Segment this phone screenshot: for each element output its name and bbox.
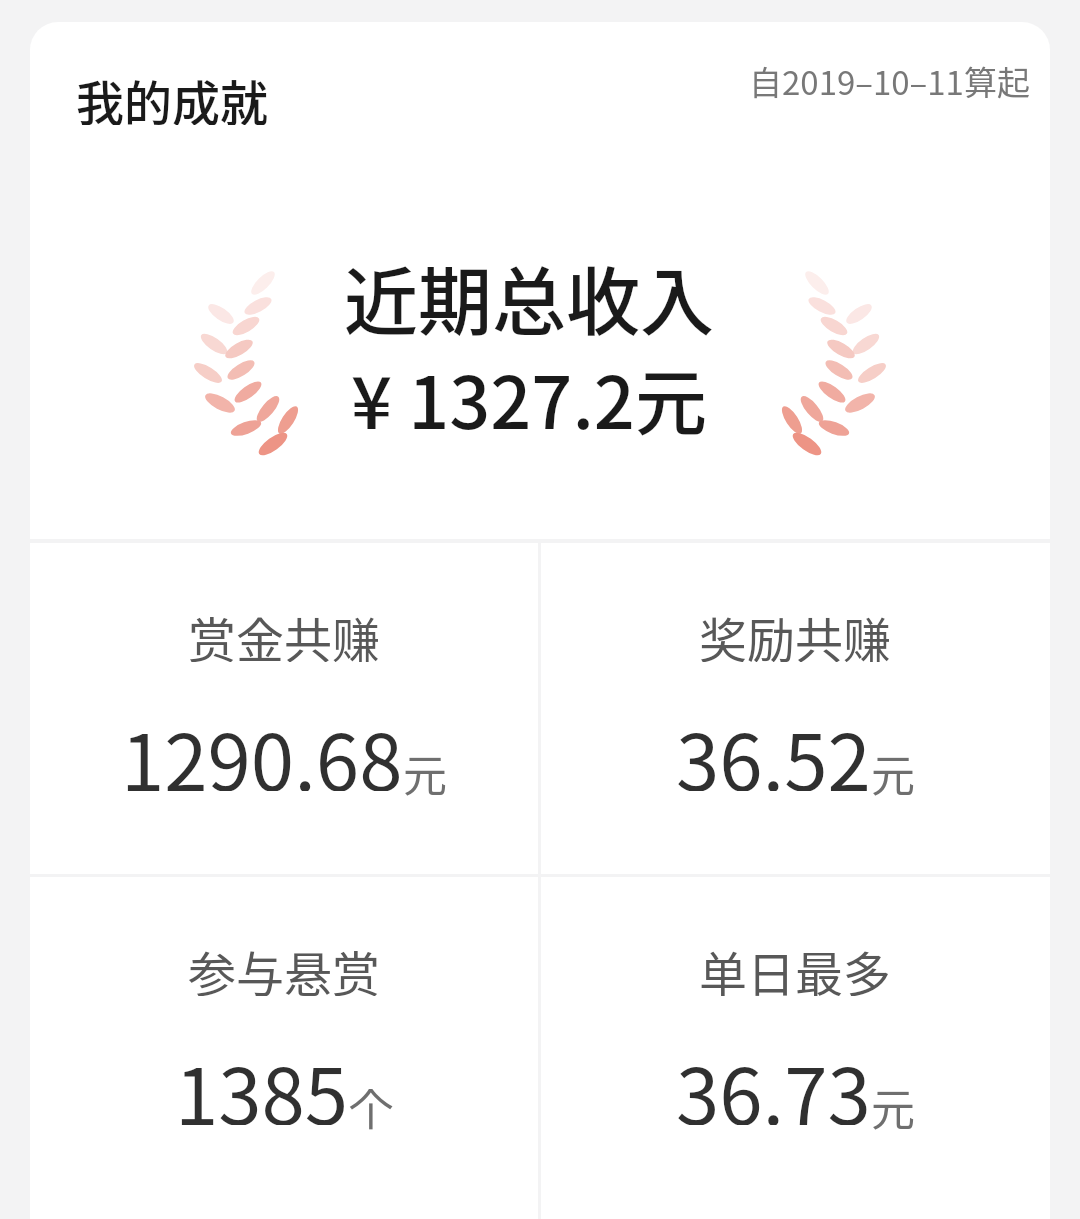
staticText: 赏金共赚 (188, 602, 381, 662)
button[interactable]: 参与悬赏 (30, 877, 538, 1219)
staticText: 参与悬赏 (188, 936, 381, 996)
staticText: 36.73 (676, 1035, 871, 1125)
staticText: 元 (403, 741, 447, 805)
staticText: 我的成就 (76, 65, 269, 125)
staticText: 元 (871, 741, 915, 805)
staticText: 近期总收入 (344, 243, 714, 343)
staticText: 1290.68 (121, 701, 403, 791)
staticText: 1385 (175, 1035, 349, 1125)
button[interactable]: 单日最多 (541, 877, 1050, 1219)
button[interactable]: 赏金共赚 (30, 543, 538, 874)
staticText: 36.52 (676, 701, 871, 791)
staticText: 自2019–10–11算起 (749, 57, 1030, 105)
staticText: 奖励共赚 (699, 602, 892, 662)
staticText: ¥ 1327.2元 (351, 345, 707, 445)
staticText: 元 (871, 1075, 915, 1139)
staticText: 个 (349, 1075, 393, 1139)
button[interactable]: 奖励共赚 (541, 543, 1050, 874)
staticText: 单日最多 (699, 936, 892, 996)
